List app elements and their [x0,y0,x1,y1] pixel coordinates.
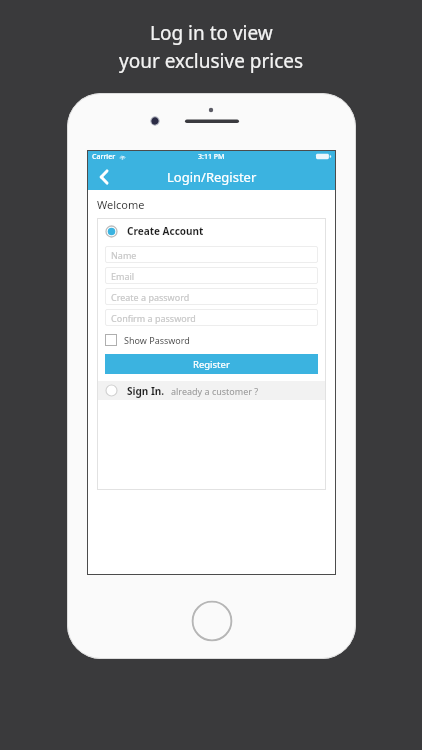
staticText: Confirm a password [111,312,196,324]
staticText: Welcome [97,197,145,212]
staticText: Email [111,270,135,282]
staticText: 3:11 PM [198,152,225,162]
button[interactable]: Show Password [97,331,326,348]
staticText: Create a password [111,291,190,303]
staticText: already a customer ? [171,385,259,397]
staticText: Login/Register [167,168,257,186]
button[interactable]: Create a password [105,288,318,305]
staticText: Name [111,249,137,261]
button[interactable]: Sign In. [97,381,326,400]
button[interactable]: Create Account [97,218,326,244]
staticText: your exclusive prices [119,48,304,74]
staticText: Carrier [92,152,116,162]
staticText: Show Password [124,334,190,346]
button[interactable]: Home [191,600,233,642]
button[interactable]: Email [105,267,318,284]
button[interactable]: Name [105,246,318,263]
staticText: Create Account [127,224,204,238]
button[interactable]: Register [105,354,318,374]
staticText: Register [193,358,230,371]
button[interactable]: Confirm a password [105,309,318,326]
button[interactable]: Back [87,163,121,190]
staticText: Log in to view [150,20,273,46]
staticText: Sign In. [127,384,165,398]
